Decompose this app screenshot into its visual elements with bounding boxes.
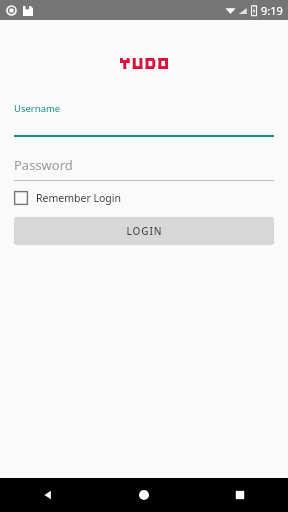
- button[interactable]: Home: [96, 478, 192, 512]
- staticText: Password: [14, 156, 73, 174]
- button[interactable]: LOGIN: [14, 217, 274, 245]
- staticText: Remember Login: [36, 191, 121, 205]
- button[interactable]: Recent apps: [192, 478, 288, 512]
- staticText: Username: [14, 102, 61, 115]
- staticText: 9:19: [261, 3, 283, 18]
- staticText: LOGIN: [126, 224, 163, 238]
- button[interactable]: Back: [0, 478, 96, 512]
- button[interactable]: Remember Login: [14, 191, 121, 205]
